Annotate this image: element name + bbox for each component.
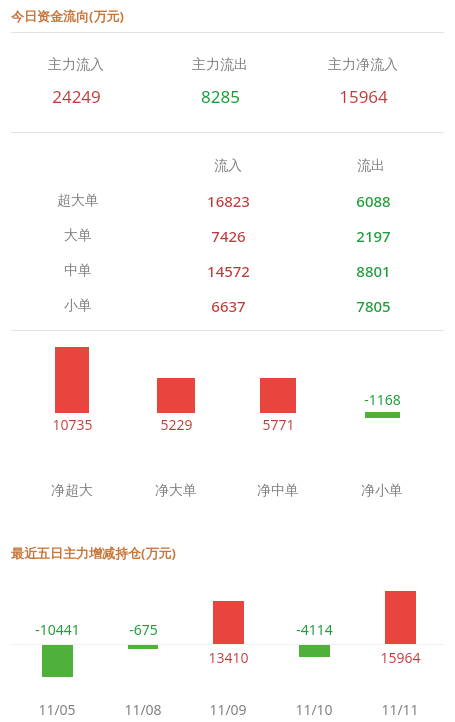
button[interactable]: 小单	[0, 289, 455, 323]
button[interactable]: 主力流入	[12, 50, 156, 112]
staticText: 11/10	[295, 700, 333, 719]
staticText: 2197	[356, 226, 391, 246]
staticText: 主力净流入	[328, 56, 398, 74]
staticText: 今日资金流向(万元)	[11, 7, 124, 25]
staticText: 小单	[64, 297, 92, 315]
staticText: 中单	[64, 262, 92, 280]
staticText: 15964	[380, 648, 421, 667]
staticText: 16823	[207, 191, 250, 211]
button[interactable]: 中单	[0, 254, 455, 288]
staticText: 11/09	[209, 700, 247, 719]
staticText: 6088	[356, 191, 391, 211]
staticText: 最近五日主力增减持仓(万元)	[11, 544, 176, 562]
staticText: 10735	[52, 415, 93, 434]
staticText: 净小单	[361, 482, 403, 500]
staticText: 净中单	[257, 482, 299, 500]
staticText: 7426	[211, 226, 246, 246]
staticText: 5229	[160, 415, 193, 434]
staticText: 11/08	[124, 700, 162, 719]
button[interactable]: 大单	[0, 219, 455, 253]
button[interactable]: 主力流出	[156, 50, 300, 112]
staticText: 超大单	[57, 192, 99, 210]
staticText: 11/05	[38, 700, 76, 719]
staticText: 8801	[356, 261, 391, 281]
staticText: 净大单	[155, 482, 197, 500]
staticText: 6637	[211, 296, 246, 316]
staticText: 8285	[201, 85, 240, 108]
staticText: 主力流出	[192, 56, 248, 74]
staticText: 13410	[208, 648, 249, 667]
staticText: 5771	[262, 415, 295, 434]
staticText: 11/11	[381, 700, 419, 719]
staticText: 14572	[207, 261, 250, 281]
staticText: -4114	[296, 620, 333, 639]
staticText: 7805	[356, 296, 391, 316]
button[interactable]: 今日资金流向(万元)	[0, 0, 455, 32]
staticText: 大单	[64, 227, 92, 245]
button[interactable]: 主力净流入	[299, 50, 443, 112]
staticText: 15964	[339, 85, 388, 108]
staticText: 24249	[52, 85, 101, 108]
staticText: -1168	[364, 390, 401, 409]
button[interactable]: 最近五日主力增减持仓(万元)	[0, 538, 455, 568]
button[interactable]: 超大单	[0, 184, 455, 218]
staticText: 流出	[357, 157, 385, 175]
staticText: 流入	[214, 157, 242, 175]
staticText: -10441	[35, 620, 80, 639]
staticText: 主力流入	[48, 56, 104, 74]
staticText: 净超大	[51, 482, 93, 500]
staticText: -675	[129, 620, 158, 639]
